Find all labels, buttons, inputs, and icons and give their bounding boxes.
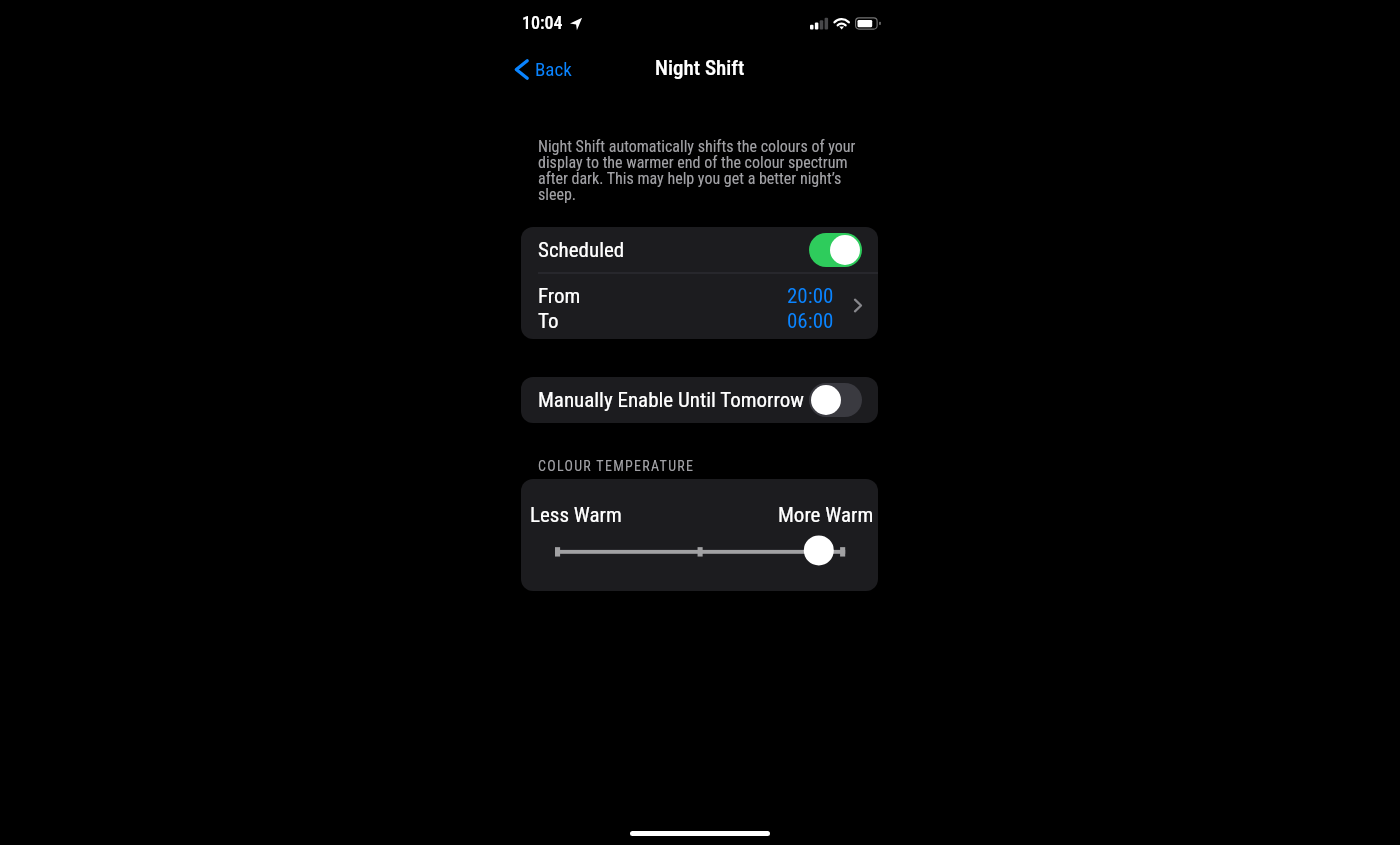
staticText: More Warm xyxy=(778,503,874,528)
staticText: 06:00 xyxy=(787,309,834,334)
staticText: From xyxy=(538,284,581,309)
staticText: Night Shift automatically shifts the col… xyxy=(538,137,860,204)
staticText: Scheduled xyxy=(538,238,625,263)
staticText: Back xyxy=(535,58,572,80)
button[interactable]: Scheduled xyxy=(809,233,862,267)
button[interactable]: Manually Enable Until Tomorrow xyxy=(809,383,862,417)
button[interactable]: Back xyxy=(508,54,582,84)
staticText: Less Warm xyxy=(530,503,622,528)
button[interactable]: Manually Enable Until Tomorrow xyxy=(521,377,878,423)
button[interactable]: From xyxy=(521,272,878,339)
staticText: COLOUR TEMPERATURE xyxy=(538,458,695,474)
staticText: 10:04 xyxy=(522,12,563,33)
button[interactable]: Colour temperature slider xyxy=(540,536,860,567)
staticText: To xyxy=(538,309,559,334)
button[interactable]: Scheduled xyxy=(521,227,878,272)
staticText: Night Shift xyxy=(655,56,745,81)
staticText: 20:00 xyxy=(787,284,834,309)
staticText: Manually Enable Until Tomorrow xyxy=(538,388,804,413)
